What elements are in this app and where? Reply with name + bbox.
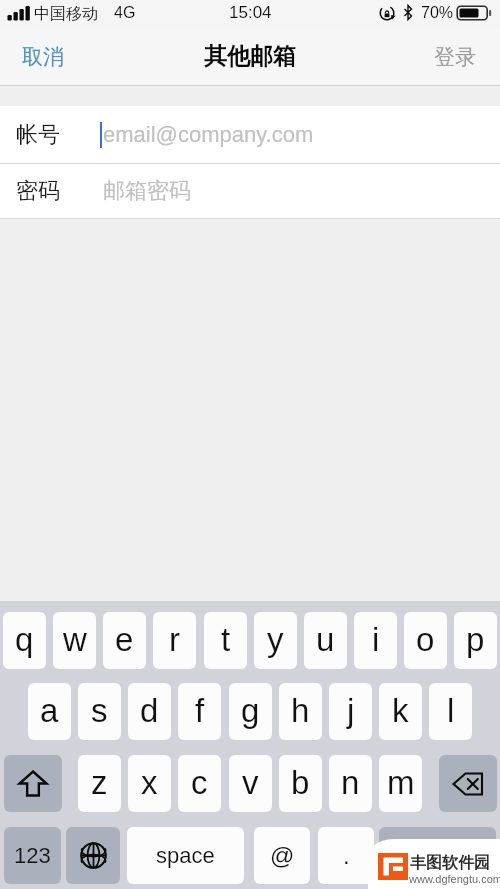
button[interactable]: 取消 (8, 34, 78, 80)
staticText: u (316, 621, 335, 658)
staticText: p (466, 621, 485, 658)
button[interactable]: e (103, 612, 146, 669)
button[interactable]: 帐号 (0, 106, 500, 163)
button[interactable]: b (279, 755, 322, 812)
staticText: l (447, 692, 455, 729)
button[interactable]: g (229, 683, 272, 740)
staticText: t (221, 621, 231, 658)
staticText: email@company.com (103, 122, 314, 147)
staticText: 中国移动 (34, 4, 98, 24)
button[interactable]: c (178, 755, 221, 812)
staticText: k (392, 692, 409, 729)
staticText: o (416, 621, 435, 658)
staticText: x (141, 764, 158, 801)
button[interactable]: i (354, 612, 397, 669)
staticText: f (195, 692, 205, 729)
button[interactable]: period (318, 827, 374, 884)
staticText: 123 (14, 843, 51, 868)
button[interactable]: z (78, 755, 121, 812)
staticText: 邮箱密码 (103, 177, 191, 205)
button[interactable]: Numbers (4, 827, 61, 884)
staticText: m (387, 764, 415, 801)
button[interactable]: w (53, 612, 96, 669)
button[interactable]: p (454, 612, 497, 669)
staticText: d (140, 692, 159, 729)
staticText: www.dgfengtu.com (409, 873, 500, 885)
staticText: v (242, 764, 259, 801)
button[interactable]: 密码 (0, 164, 500, 218)
staticText: r (169, 621, 180, 658)
button[interactable]: n (329, 755, 372, 812)
staticText: h (291, 692, 310, 729)
staticText: e (115, 621, 134, 658)
staticText: a (40, 692, 59, 729)
staticText: 取消 (22, 44, 64, 70)
button[interactable]: m (379, 755, 422, 812)
button[interactable]: k (379, 683, 422, 740)
button[interactable]: 登录 (420, 34, 490, 80)
button[interactable]: u (304, 612, 347, 669)
button[interactable]: l (429, 683, 472, 740)
button[interactable]: h (279, 683, 322, 740)
staticText: s (91, 692, 108, 729)
button[interactable]: s (78, 683, 121, 740)
staticText: 15:04 (229, 3, 272, 22)
button[interactable]: Return (379, 827, 496, 884)
button[interactable]: j (329, 683, 372, 740)
button[interactable]: y (254, 612, 297, 669)
staticText: 70% (421, 4, 454, 22)
staticText: n (341, 764, 360, 801)
staticText: b (291, 764, 310, 801)
staticText: 丰图软件园 (410, 853, 490, 873)
staticText: 其他邮箱 (204, 42, 296, 71)
button[interactable]: t (204, 612, 247, 669)
button[interactable]: o (404, 612, 447, 669)
button[interactable]: at sign (254, 827, 310, 884)
staticText: w (63, 621, 87, 658)
button[interactable]: v (229, 755, 272, 812)
button[interactable]: a (28, 683, 71, 740)
staticText: space (156, 843, 215, 868)
button[interactable]: q (3, 612, 46, 669)
button[interactable]: r (153, 612, 196, 669)
staticText: q (15, 621, 34, 658)
staticText: i (372, 621, 380, 658)
staticText: 登录 (434, 44, 476, 70)
staticText: g (241, 692, 260, 729)
staticText: c (191, 764, 208, 801)
staticText: 密码 (16, 177, 60, 205)
button[interactable]: space (127, 827, 244, 884)
staticText: 4G (114, 4, 136, 22)
staticText: j (347, 692, 355, 729)
button[interactable]: Backspace (439, 755, 497, 812)
button[interactable]: x (128, 755, 171, 812)
staticText: z (91, 764, 108, 801)
staticText: y (267, 621, 284, 658)
staticText: @ (270, 842, 295, 869)
button[interactable]: Switch keyboard (66, 827, 120, 884)
staticText: . (343, 842, 350, 869)
button[interactable]: f (178, 683, 221, 740)
staticText: 帐号 (16, 121, 60, 149)
button[interactable]: d (128, 683, 171, 740)
button[interactable]: Shift (4, 755, 62, 812)
